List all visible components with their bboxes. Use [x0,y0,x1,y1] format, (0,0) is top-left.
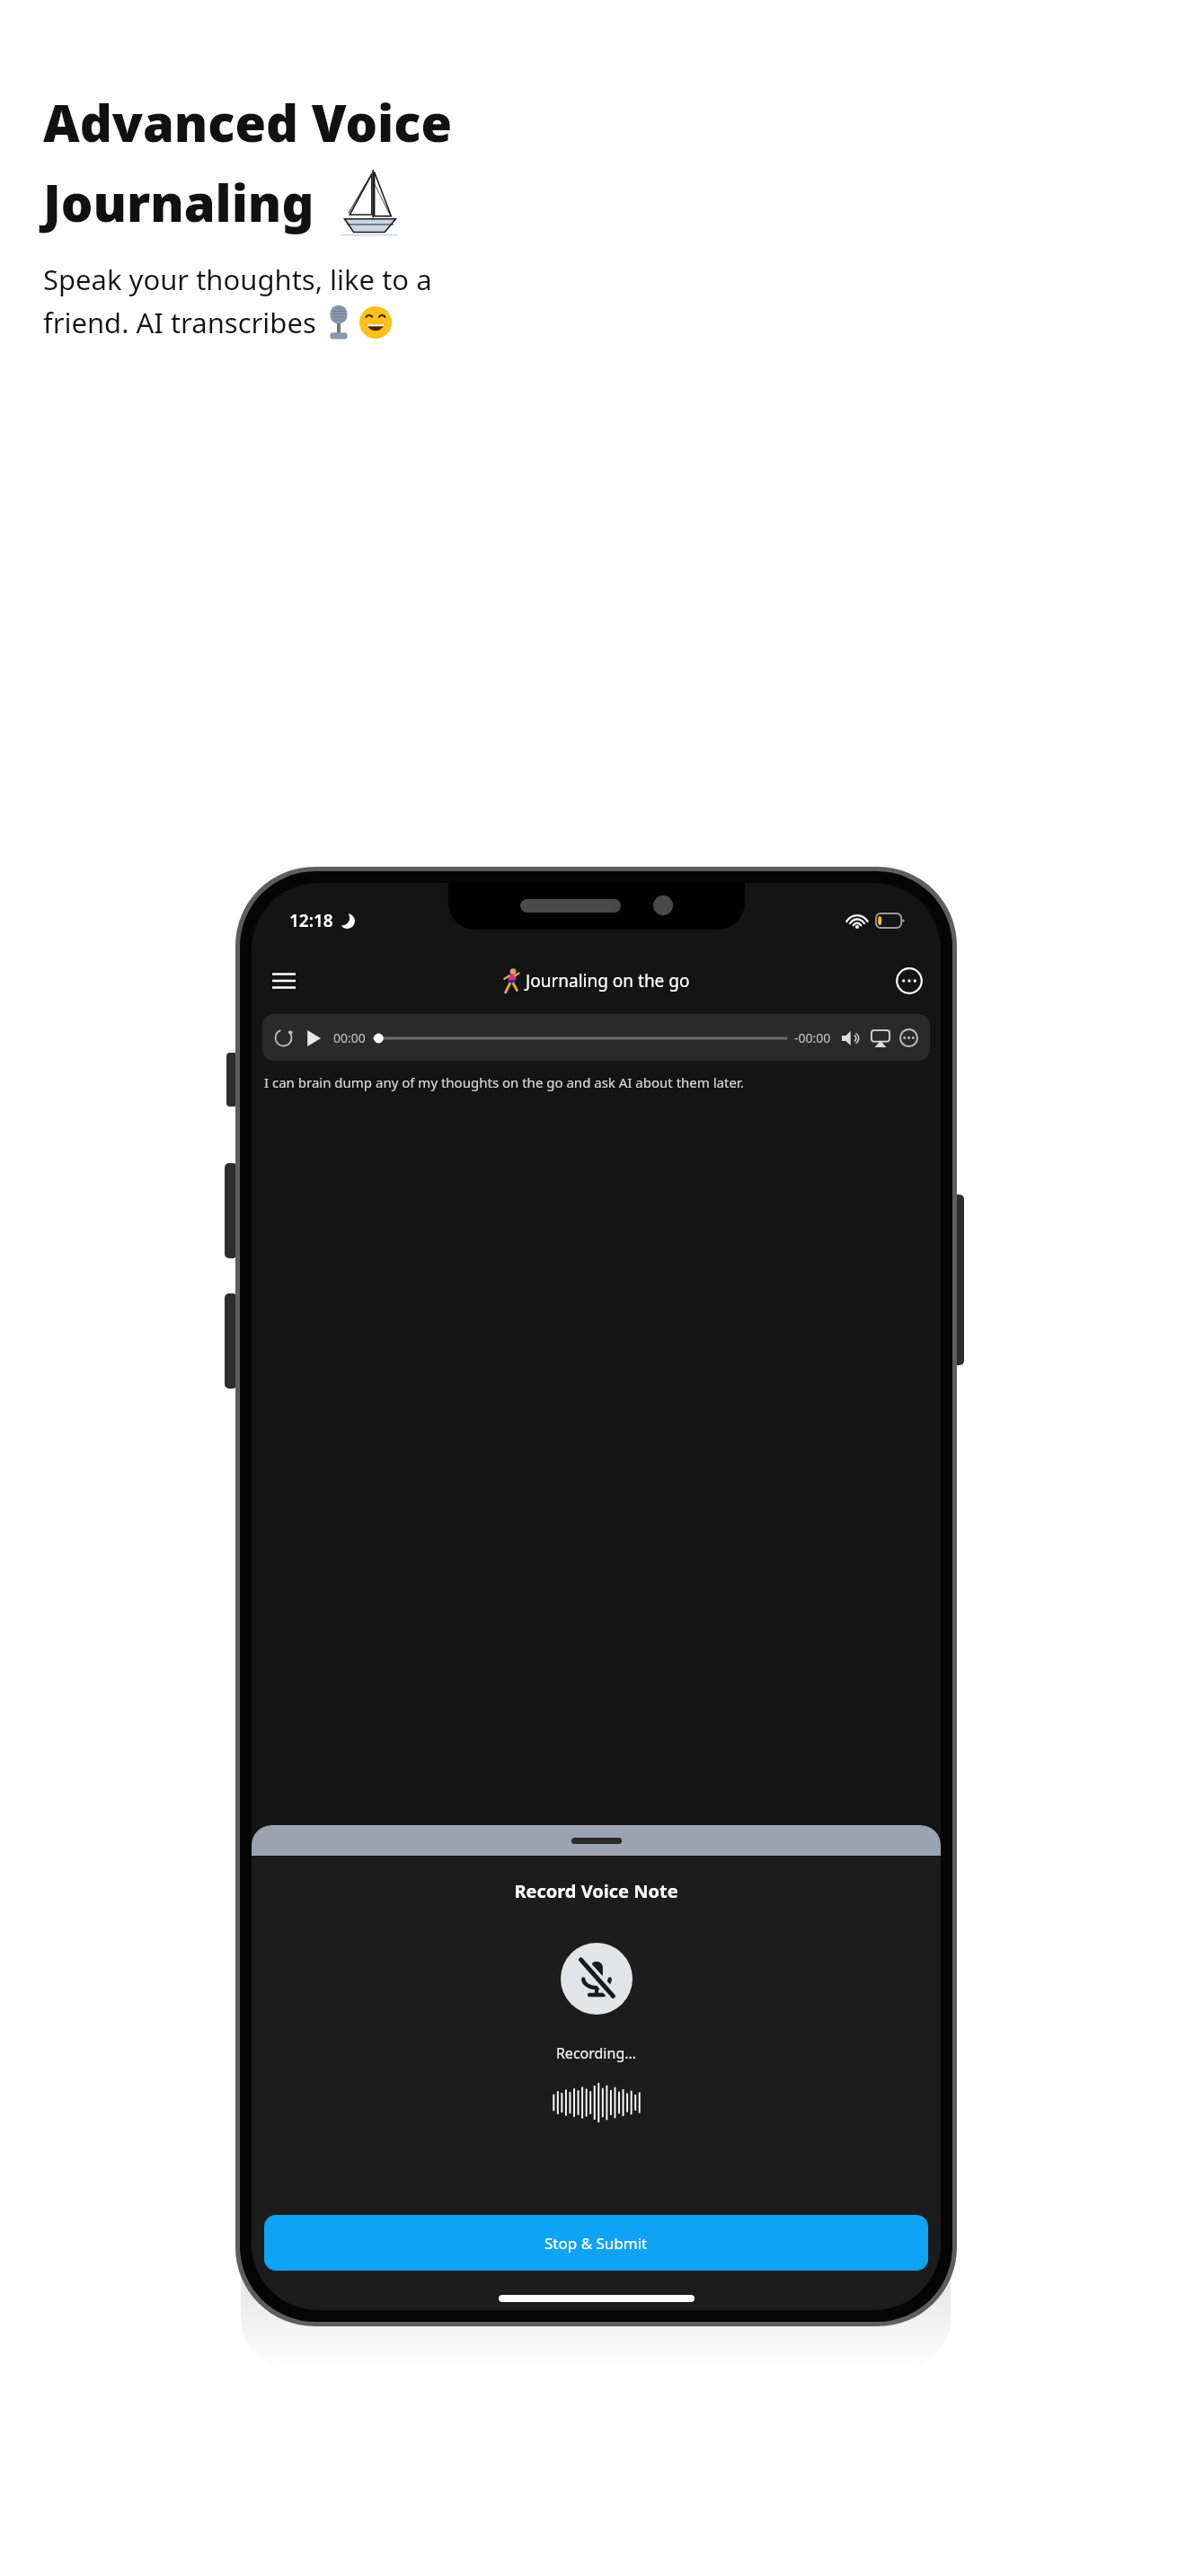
other: AirPlay [872,1029,889,1047]
other: Play [305,1030,322,1046]
button[interactable]: Menu [264,961,304,1001]
staticText: Journaling on the go [526,969,690,992]
button[interactable]: Stop & Submit [264,2215,928,2271]
staticText: friend. AI transcribes [43,304,323,341]
other: More [899,1028,918,1047]
staticText: I can brain dump any of my thoughts on t… [264,1073,744,1091]
other: Volume [842,1030,862,1046]
staticText: Stop & Submit [544,2233,648,2254]
button[interactable]: More options [890,962,928,1000]
staticText: 12:18 [289,909,333,932]
staticText: 00:00 [333,1029,366,1046]
staticText: Journaling [43,168,314,236]
staticText: Advanced Voice [43,88,453,156]
staticText: Recording... [252,2043,941,2063]
staticText: Record Voice Note [252,1879,941,1903]
button[interactable]: Skip back 10 seconds [262,1014,930,1061]
staticText: Speak your thoughts, like to a [43,260,432,298]
staticText: -00:00 [794,1029,831,1046]
other: Skip back 10 seconds [274,1028,293,1047]
button[interactable]: Mute microphone [561,1943,633,2015]
button[interactable] [252,1825,941,1856]
